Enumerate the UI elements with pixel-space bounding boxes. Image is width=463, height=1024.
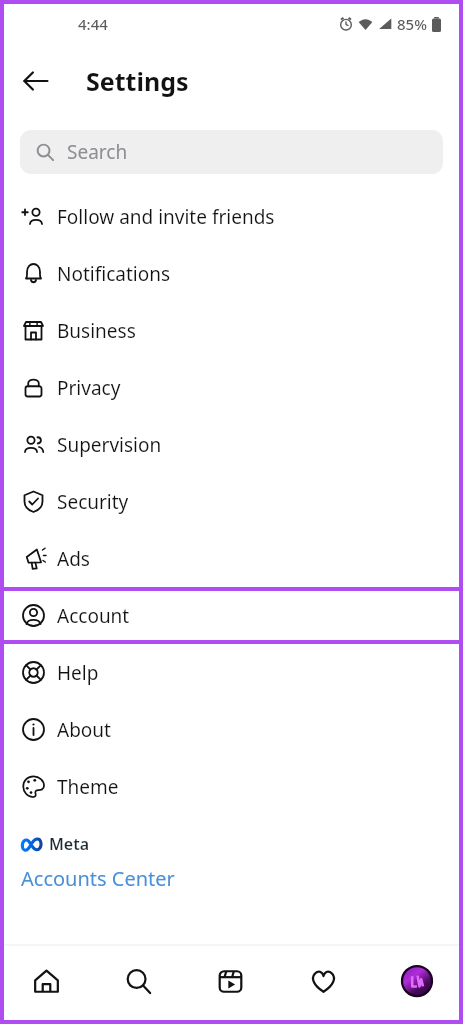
button[interactable]: Reels [184, 945, 277, 1017]
staticText: Business [57, 318, 136, 344]
button[interactable]: Accounts Center [0, 863, 463, 896]
staticText: Meta [49, 833, 90, 855]
button[interactable]: Supervision [0, 416, 463, 473]
staticText: Account [57, 603, 130, 629]
staticText: Accounts Center [21, 865, 175, 892]
button[interactable]: Profile [370, 945, 463, 1017]
button[interactable]: About [0, 701, 463, 758]
button[interactable]: Account [0, 587, 463, 644]
staticText: Theme [57, 774, 119, 800]
button[interactable]: Theme [0, 758, 463, 815]
button[interactable]: Security [0, 473, 463, 530]
button[interactable]: Privacy [0, 359, 463, 416]
button[interactable]: Help [0, 644, 463, 701]
staticText: Search [67, 139, 128, 165]
button[interactable]: Home [0, 945, 92, 1017]
button[interactable]: Search [20, 130, 443, 174]
staticText: Privacy [57, 375, 121, 401]
button[interactable]: Ads [0, 530, 463, 587]
staticText: 4:44 [78, 14, 108, 34]
staticText: Settings [86, 64, 189, 98]
staticText: 85% [397, 14, 427, 34]
staticText: Security [57, 489, 129, 515]
staticText: Supervision [57, 432, 162, 458]
staticText: Help [57, 660, 99, 686]
button[interactable]: Follow and invite friends [0, 188, 463, 245]
button[interactable]: Search [92, 945, 184, 1017]
button[interactable]: Notifications [0, 245, 463, 302]
staticText: Notifications [57, 261, 171, 287]
staticText: About [57, 717, 111, 743]
button[interactable]: Activity [277, 945, 370, 1017]
button[interactable]: Back [12, 57, 60, 105]
button[interactable]: Business [0, 302, 463, 359]
staticText: Follow and invite friends [57, 204, 275, 230]
staticText: Ads [57, 546, 90, 572]
